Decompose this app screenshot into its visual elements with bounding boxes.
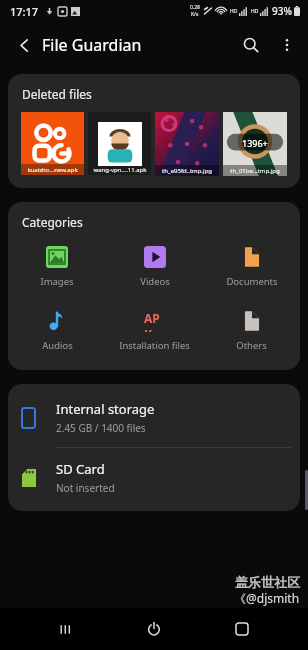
staticText: Others [236,339,267,352]
staticText: 盖乐世社区 [235,574,300,590]
staticText: Internal storage [56,400,155,418]
staticText: HD [230,8,238,15]
button[interactable]: Power [132,608,176,650]
button[interactable]: wang-vpn....11.apk [88,112,151,175]
staticText: 2.45 GB / 1400 files [56,421,146,435]
button[interactable]: kuaisho...new.apk [21,112,84,175]
staticText: Audios [42,339,73,352]
staticText: APK [144,310,166,332]
staticText: File Guardian [42,34,142,56]
button[interactable]: Search [232,26,270,64]
staticText: 17:17 [10,4,39,19]
button[interactable]: th_e95fd..tmp.jpg [155,112,219,176]
button[interactable]: SD Card [8,448,300,507]
staticText: Deleted files [22,86,92,102]
staticText: kuaisho...new.apk [27,166,78,174]
button[interactable]: Recents [44,608,88,650]
staticText: Not inserted [56,481,115,495]
staticText: wang-vpn....11.apk [93,166,147,174]
staticText: SD Card [56,460,105,478]
staticText: K/s [191,11,199,18]
staticText: Documents [226,275,278,288]
button[interactable]: Documents [203,244,300,290]
button[interactable]: Internal storage [8,388,300,447]
staticText: th_01be...tmp.jpg [230,167,280,175]
button[interactable]: Back [6,27,42,63]
button[interactable]: Images [8,244,106,290]
staticText: Installation files [119,339,190,352]
staticText: 93% [272,4,292,18]
button[interactable]: APK [106,308,203,354]
button[interactable]: Deleted files [8,74,300,188]
button[interactable]: Audios [8,308,106,354]
button[interactable]: Others [203,308,300,354]
staticText: HD [251,8,259,15]
staticText: 0.28 [190,4,200,11]
staticText: 1396+ [242,137,268,149]
staticText: Videos [140,275,170,288]
staticText: Categories [22,214,83,230]
button[interactable]: Videos [106,244,203,290]
button[interactable]: More options [270,28,304,62]
staticText: 《@djsmith [234,590,300,606]
staticText: th_e95fd..tmp.jpg [162,167,212,175]
button[interactable]: Home [220,608,264,650]
button[interactable]: 1396+ [223,112,287,176]
staticText: Images [40,275,74,288]
